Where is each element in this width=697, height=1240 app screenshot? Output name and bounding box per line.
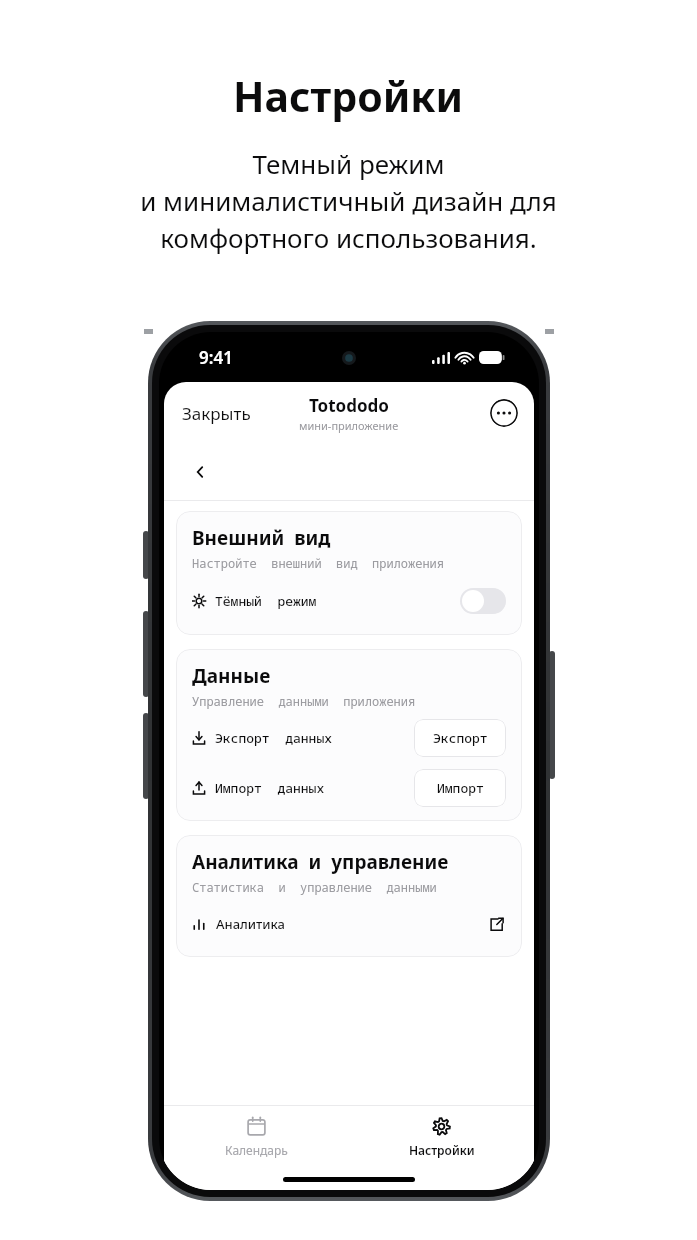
staticText: Данные [192, 663, 271, 689]
button[interactable]: Тёмный режим выключен [460, 588, 506, 614]
button[interactable]: Настройки [349, 1106, 534, 1168]
staticText: Настройки [233, 68, 464, 124]
staticText: Экспорт [433, 729, 488, 747]
staticText: Экспорт данных [215, 729, 333, 747]
staticText: Настройки [409, 1142, 475, 1158]
button[interactable]: Назад [184, 456, 216, 488]
staticText: 9:41 [199, 346, 233, 369]
button[interactable]: Аналитика [192, 905, 506, 943]
staticText: Аналитика и управление [192, 849, 449, 875]
button[interactable]: Импорт [414, 769, 506, 807]
staticText: Totododo [309, 394, 389, 417]
staticText: Темный режим и минималистичный дизайн дл… [140, 146, 557, 256]
staticText: Настройте внешний вид приложения [192, 555, 445, 571]
button[interactable]: Закрыть [178, 396, 255, 431]
staticText: Импорт [437, 779, 484, 797]
staticText: Тёмный режим [215, 592, 317, 610]
button[interactable]: Импорт данных [192, 769, 414, 807]
staticText: Импорт данных [215, 779, 325, 797]
staticText: Статистика и управление данными [192, 879, 437, 895]
staticText: Календарь [225, 1142, 288, 1158]
staticText: Управление данными приложения [192, 693, 416, 709]
button[interactable]: Экспорт [414, 719, 506, 757]
button[interactable]: Дополнительно [490, 399, 518, 427]
staticText: Аналитика [216, 915, 285, 933]
button[interactable]: Экспорт данных [192, 719, 414, 757]
staticText: мини-приложение [299, 418, 399, 433]
button[interactable]: Тёмный режим [192, 581, 506, 621]
staticText: Внешний вид [192, 525, 331, 551]
staticText: Закрыть [182, 402, 251, 425]
button[interactable]: Календарь [164, 1106, 349, 1168]
